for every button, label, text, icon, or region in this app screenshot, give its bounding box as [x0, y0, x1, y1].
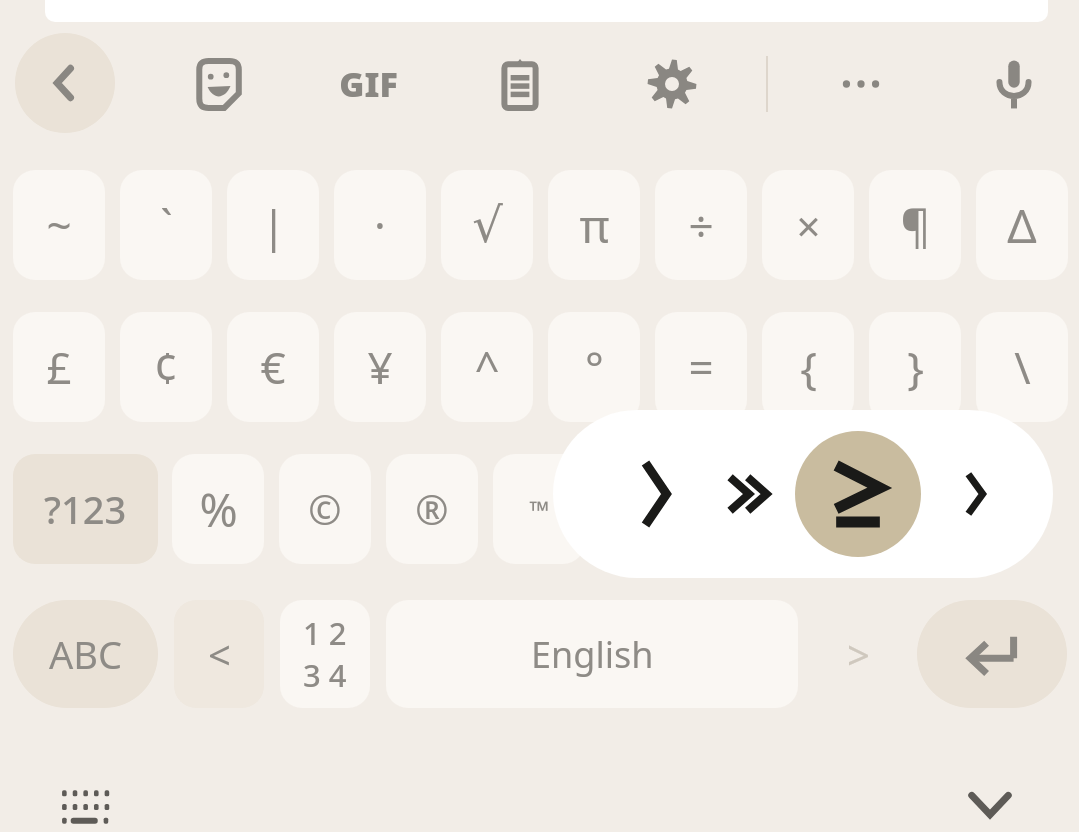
staticText: ÷	[688, 195, 714, 255]
staticText: ¥	[367, 337, 393, 397]
button[interactable]: Stickers	[172, 38, 264, 130]
staticText: °	[585, 337, 604, 397]
staticText: <	[208, 627, 231, 681]
staticText: GIF	[339, 61, 398, 107]
button[interactable]: |	[227, 170, 319, 280]
button[interactable]: Settings	[626, 38, 718, 130]
button[interactable]: €	[227, 312, 319, 422]
button[interactable]: {	[762, 312, 854, 422]
button[interactable]: ]	[707, 454, 799, 564]
button[interactable]: Back	[15, 33, 115, 133]
button[interactable]: Voice input	[968, 38, 1060, 130]
staticText: >	[847, 627, 870, 681]
button[interactable]: More options	[815, 38, 907, 130]
staticText: √	[472, 197, 503, 253]
staticText: ®	[415, 482, 449, 536]
staticText: Δ	[1007, 194, 1037, 257]
staticText: £	[46, 337, 72, 397]
staticText: ×	[796, 197, 821, 254]
button[interactable]: Hide keyboard	[948, 768, 1032, 832]
staticText: \	[1014, 337, 1031, 397]
button[interactable]: ABC	[13, 600, 158, 708]
staticText: ©	[308, 482, 342, 536]
button[interactable]: Δ	[976, 170, 1068, 280]
staticText: `	[160, 195, 173, 255]
staticText: ¶	[900, 194, 931, 257]
staticText: }	[907, 337, 924, 397]
button[interactable]: ^	[441, 312, 533, 422]
button[interactable]: [	[600, 454, 692, 564]
staticText: ?123	[44, 483, 127, 535]
button[interactable]: ×	[762, 170, 854, 280]
staticText: %	[199, 478, 238, 541]
staticText: π	[579, 194, 610, 257]
button[interactable]: √	[441, 170, 533, 280]
button[interactable]	[601, 410, 711, 578]
staticText: |	[261, 195, 286, 255]
staticText: 3 4	[303, 654, 347, 696]
staticText: ^	[474, 337, 500, 397]
button[interactable]: >	[812, 600, 904, 708]
button[interactable]: English	[386, 600, 798, 708]
button[interactable]: %	[172, 454, 264, 564]
staticText: ¢	[153, 337, 179, 397]
button[interactable]: <	[814, 454, 906, 564]
staticText: ]	[745, 478, 761, 541]
button[interactable]: ¥	[334, 312, 426, 422]
staticText: ™	[529, 492, 550, 527]
staticText: ·	[374, 195, 386, 255]
staticText: €	[260, 337, 286, 397]
staticText: 1 2	[303, 612, 347, 654]
button[interactable]: ÷	[655, 170, 747, 280]
button[interactable]: ©	[279, 454, 371, 564]
staticText: <	[847, 478, 874, 541]
button[interactable]: Switch keyboard	[44, 772, 132, 832]
button[interactable]: ¢	[120, 312, 212, 422]
staticText: English	[531, 630, 654, 679]
button[interactable]	[693, 410, 805, 578]
button[interactable]: ?123	[13, 454, 158, 564]
button[interactable]: \	[976, 312, 1068, 422]
staticText: [	[638, 478, 654, 541]
button[interactable]: Clipboard	[474, 38, 566, 130]
button[interactable]: £	[13, 312, 105, 422]
button[interactable]: >	[921, 454, 1013, 564]
button[interactable]: <	[174, 600, 264, 708]
button[interactable]: Enter	[917, 600, 1067, 708]
button[interactable]: ·	[334, 170, 426, 280]
staticText: =	[688, 337, 714, 397]
button[interactable]	[795, 431, 921, 557]
button[interactable]: 1 2	[280, 600, 370, 708]
button[interactable]: °	[548, 312, 640, 422]
button[interactable]: }	[869, 312, 961, 422]
staticText: >	[954, 478, 981, 541]
button[interactable]: =	[655, 312, 747, 422]
button[interactable]: ~	[13, 170, 105, 280]
button[interactable]: GIF	[322, 38, 414, 130]
button[interactable]: ™	[493, 454, 585, 564]
button[interactable]: ¶	[869, 170, 961, 280]
staticText: ~	[46, 195, 72, 255]
button[interactable]: `	[120, 170, 212, 280]
staticText: {	[800, 337, 817, 397]
staticText: ABC	[49, 628, 122, 680]
button[interactable]: π	[548, 170, 640, 280]
button[interactable]: ®	[386, 454, 478, 564]
button[interactable]	[925, 410, 1025, 578]
